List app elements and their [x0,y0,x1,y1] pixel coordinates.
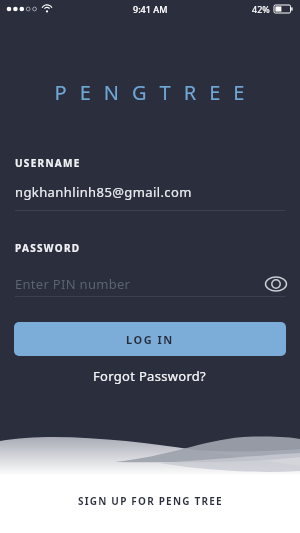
button[interactable]: Enter PIN number [15,271,255,296]
staticText: LOG IN [126,332,174,347]
staticText: Enter PIN number [15,275,131,293]
staticText: 9:41 AM [133,3,168,15]
button[interactable]: LOG IN [14,322,286,356]
button[interactable] [262,273,290,295]
staticText: 42% [252,3,270,15]
staticText: ngkhanhlinh85@gmail.com [15,183,192,201]
staticText: PENGTREE [6,79,300,106]
button[interactable]: Forgot Password? [83,365,217,387]
staticText: PASSWORD [15,241,81,255]
button[interactable]: ngkhanhlinh85@gmail.com [15,178,285,206]
button[interactable]: SIGN UP FOR PENG TREE [68,490,233,512]
staticText: USERNAME [15,156,81,170]
staticText: SIGN UP FOR PENG TREE [78,494,223,508]
staticText: Forgot Password? [93,367,207,385]
